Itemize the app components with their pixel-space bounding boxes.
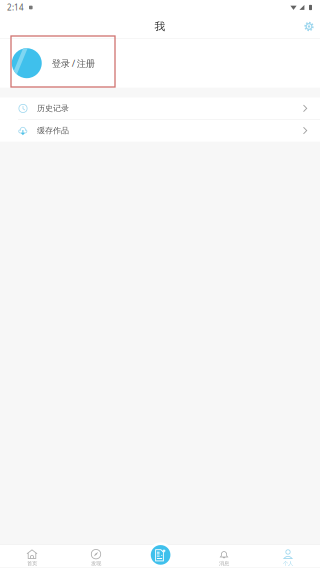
button[interactable] [128,545,192,567]
button[interactable]: 缓存作品 [0,120,320,141]
button[interactable]: 首页 [0,545,64,567]
button[interactable]: 消息 [192,545,256,567]
staticText: 首页 [27,560,37,567]
staticText: 登录 / 注册 [52,57,95,69]
button[interactable]: 个人 [256,545,320,567]
staticText: 发现 [91,560,101,567]
staticText: 消息 [219,560,229,567]
staticText: 我 [154,20,165,33]
button[interactable]: 发现 [64,545,128,567]
staticText: 历史记录 [37,103,69,113]
button[interactable]: Settings [298,15,320,37]
button[interactable]: Create [148,542,173,567]
staticText: 个人 [283,560,293,567]
button[interactable]: 登录 / 注册 [0,39,320,88]
button[interactable]: 历史记录 [0,98,320,119]
staticText: 缓存作品 [37,126,69,135]
staticText: 2:14 [7,2,24,13]
